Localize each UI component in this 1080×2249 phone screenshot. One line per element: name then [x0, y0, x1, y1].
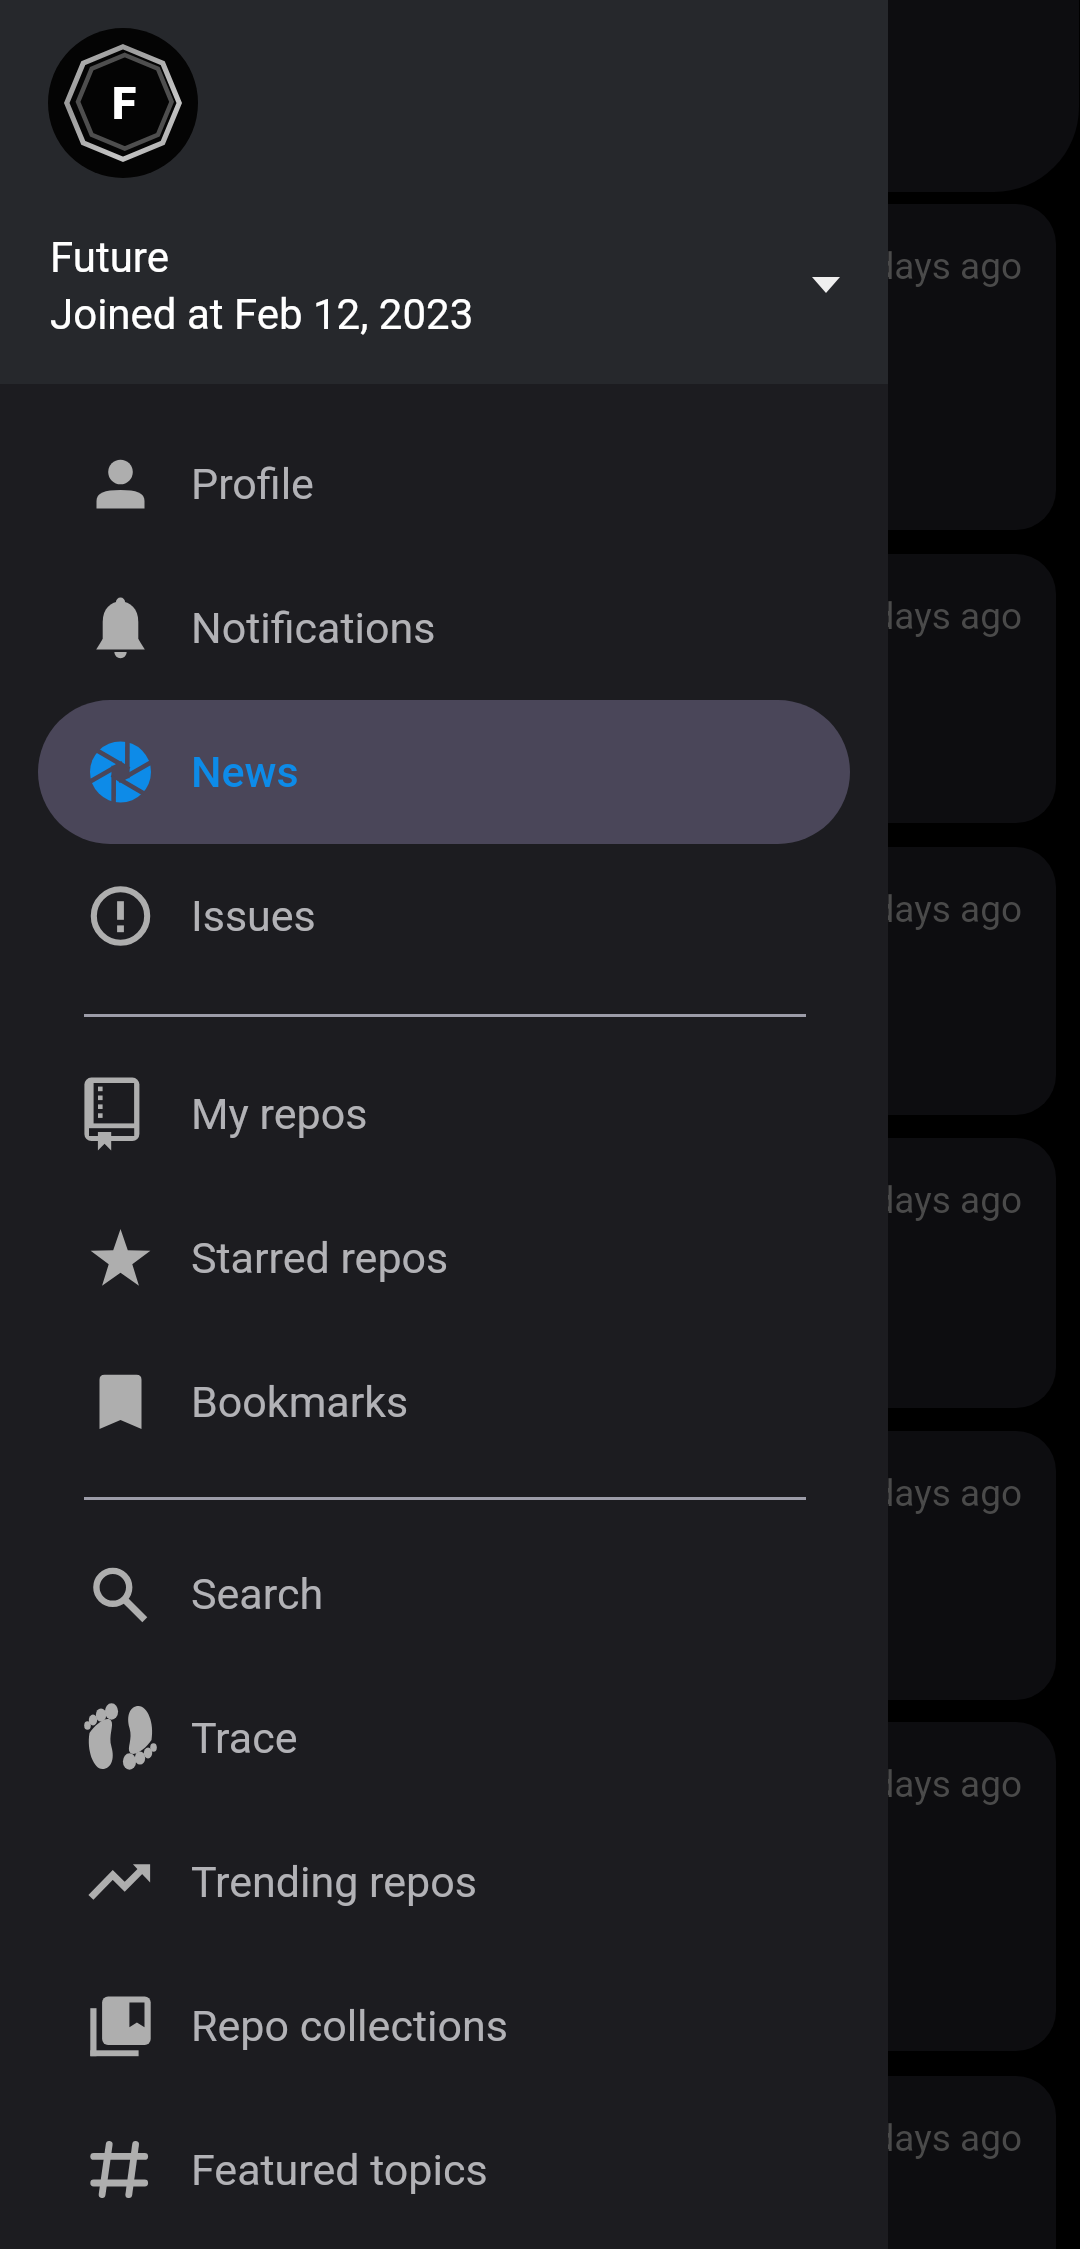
button[interactable]: Trace [38, 1666, 850, 1810]
other: Switch account [812, 277, 840, 293]
button[interactable]: Featured topics [38, 2098, 850, 2242]
staticText: Trending repos [191, 1857, 477, 1907]
button[interactable] [24, 0, 1079, 192]
button[interactable]: Issues [38, 844, 850, 988]
button[interactable]: Updated 3 days ago [24, 204, 1056, 530]
button[interactable]: Bookmarks [38, 1330, 850, 1474]
button[interactable]: Updated 3 days ago [24, 554, 1056, 823]
staticText: Profile [191, 459, 314, 509]
staticText: My repos [191, 1089, 368, 1139]
button[interactable]: Profile [38, 412, 850, 556]
button[interactable]: Updated 3 days ago [24, 847, 1056, 1115]
staticText: Future [50, 233, 169, 282]
button[interactable]: Search [38, 1522, 850, 1666]
staticText: Updated 3 days ago [696, 1472, 1023, 1515]
button[interactable]: Updated 3 days ago [24, 1138, 1056, 1408]
button[interactable]: Updated 3 days ago [24, 2076, 1056, 2249]
staticText: Updated 3 days ago [696, 245, 1023, 288]
staticText: Updated 3 days ago [696, 888, 1023, 931]
staticText: Search [191, 1569, 324, 1619]
staticText: Joined at Feb 12, 2023 [50, 290, 474, 339]
button[interactable]: Starred repos [38, 1186, 850, 1330]
staticText: Bookmarks [191, 1377, 409, 1427]
staticText: Updated 3 days ago [696, 1763, 1023, 1806]
staticText: Notifications [191, 603, 436, 653]
button[interactable]: F [0, 0, 888, 384]
staticText: Starred repos [191, 1233, 449, 1283]
button[interactable]: My repos [38, 1042, 850, 1186]
staticText: Featured topics [191, 2145, 488, 2195]
button[interactable]: Trending repos [38, 1810, 850, 1954]
staticText: F [112, 78, 137, 130]
staticText: Updated 3 days ago [696, 1179, 1023, 1222]
button[interactable]: Repo collections [38, 1954, 850, 2098]
staticText: Updated 3 days ago [696, 595, 1023, 638]
staticText: Trace [191, 1713, 298, 1763]
button[interactable]: News [38, 700, 850, 844]
staticText: Repo collections [191, 2001, 508, 2051]
staticText: Updated 3 days ago [696, 2117, 1023, 2160]
button[interactable]: Updated 3 days ago [24, 1431, 1056, 1700]
button[interactable]: Updated 3 days ago [24, 1722, 1056, 2051]
staticText: News [191, 747, 299, 797]
button[interactable]: Notifications [38, 556, 850, 700]
staticText: Issues [191, 891, 316, 941]
